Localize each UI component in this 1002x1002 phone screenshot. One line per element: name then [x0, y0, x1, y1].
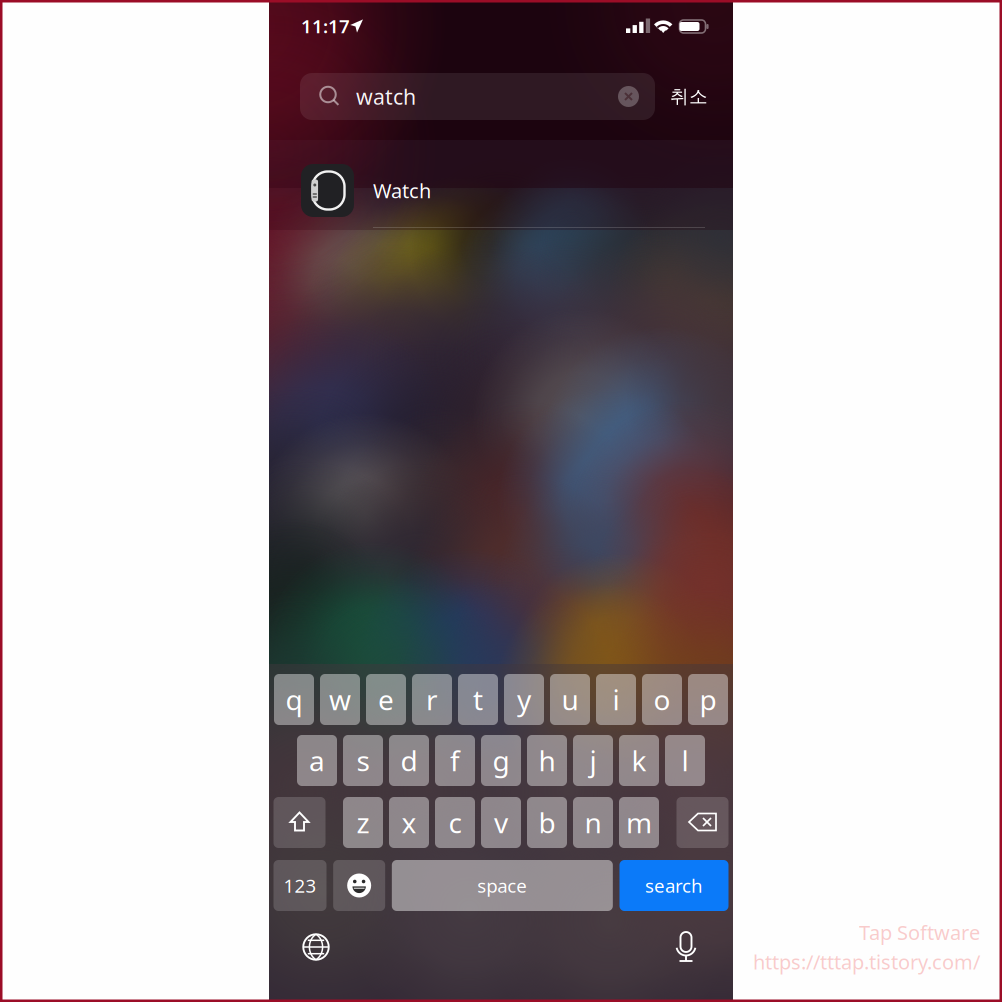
button[interactable]: 123	[273, 860, 326, 911]
button[interactable]: g	[481, 735, 521, 786]
button[interactable]: Shift	[273, 797, 325, 848]
button[interactable]: space	[392, 860, 613, 911]
staticText: space	[477, 873, 527, 898]
staticText: b	[538, 804, 555, 841]
button[interactable]: x	[389, 797, 429, 848]
button[interactable]: m	[619, 797, 659, 848]
staticText: p	[699, 681, 716, 718]
button[interactable]: r	[412, 674, 452, 725]
button[interactable]: i	[596, 674, 636, 725]
staticText: m	[626, 804, 652, 841]
staticText: v	[494, 804, 508, 841]
staticText: a	[309, 742, 325, 779]
button[interactable]: f	[435, 735, 475, 786]
button[interactable]: Watch	[269, 164, 733, 228]
button[interactable]: l	[665, 735, 705, 786]
button[interactable]: z	[343, 797, 383, 848]
staticText: h	[538, 742, 555, 779]
button[interactable]: a	[297, 735, 337, 786]
button[interactable]: Change keyboard	[298, 929, 334, 965]
button[interactable]: w	[320, 674, 360, 725]
staticText: watch	[356, 82, 416, 111]
staticText: f	[450, 742, 460, 779]
staticText: u	[561, 681, 578, 718]
staticText: o	[653, 681, 670, 718]
button[interactable]: q	[274, 674, 314, 725]
staticText: t	[473, 681, 483, 718]
button[interactable]: 취소	[667, 73, 711, 120]
staticText: j	[589, 742, 596, 779]
staticText: k	[631, 742, 646, 779]
staticText: x	[401, 804, 416, 841]
staticText: y	[517, 681, 531, 718]
button[interactable]: j	[573, 735, 613, 786]
staticText: 11:17	[301, 14, 350, 38]
button[interactable]: Emoji keyboard	[333, 860, 385, 911]
staticText: https://tttap.tistory.com/	[753, 948, 980, 975]
staticText: s	[356, 742, 369, 779]
staticText: 취소	[670, 85, 708, 108]
button[interactable]: s	[343, 735, 383, 786]
staticText: search	[645, 873, 703, 898]
button[interactable]: e	[366, 674, 406, 725]
staticText: i	[612, 681, 619, 718]
button[interactable]: b	[527, 797, 567, 848]
button[interactable]: v	[481, 797, 521, 848]
staticText: g	[492, 742, 509, 779]
button[interactable]: o	[642, 674, 682, 725]
staticText: z	[356, 804, 369, 841]
staticText: q	[285, 681, 302, 718]
button[interactable]: k	[619, 735, 659, 786]
button[interactable]: t	[458, 674, 498, 725]
button[interactable]: d	[389, 735, 429, 786]
button[interactable]: search	[619, 860, 728, 911]
button[interactable]: p	[688, 674, 728, 725]
staticText: n	[584, 804, 601, 841]
staticText: 123	[283, 873, 316, 898]
staticText: l	[681, 742, 688, 779]
staticText: w	[329, 681, 351, 718]
staticText: c	[448, 804, 461, 841]
staticText: e	[378, 681, 394, 718]
staticText: d	[400, 742, 417, 779]
button[interactable]: Dictate	[668, 929, 704, 965]
button[interactable]: h	[527, 735, 567, 786]
button[interactable]: c	[435, 797, 475, 848]
staticText: Watch	[373, 177, 431, 204]
button[interactable]: watch	[300, 73, 655, 120]
button[interactable]: Delete	[676, 797, 728, 848]
button[interactable]: n	[573, 797, 613, 848]
button[interactable]: y	[504, 674, 544, 725]
staticText: r	[426, 681, 438, 718]
staticText: Tap Software	[859, 919, 980, 945]
button[interactable]: u	[550, 674, 590, 725]
